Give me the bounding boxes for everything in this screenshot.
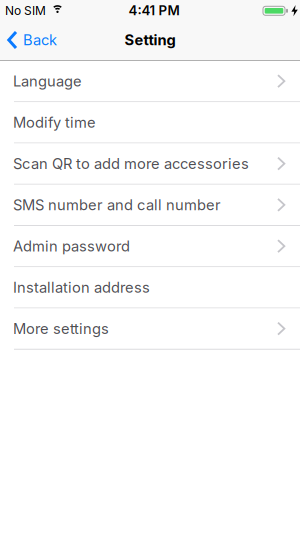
staticText: More settings [13, 320, 109, 337]
button[interactable]: Installation address [0, 267, 300, 307]
staticText: 4:41 PM [128, 3, 179, 18]
staticText: Language [13, 72, 82, 90]
button[interactable]: More settings [0, 308, 300, 349]
button[interactable]: Language [0, 61, 300, 101]
staticText: Setting [124, 31, 175, 49]
staticText: Back [23, 31, 57, 49]
button[interactable]: Modify time [0, 102, 300, 142]
staticText: Installation address [13, 279, 150, 296]
staticText: No SIM [5, 4, 46, 18]
button[interactable]: Back [0, 30, 57, 49]
staticText: Modify time [13, 114, 96, 131]
button[interactable]: SMS number and call number [0, 185, 300, 225]
staticText: Admin password [13, 237, 130, 255]
button[interactable]: Scan QR to add more accessories [0, 143, 300, 184]
button[interactable]: Admin password [0, 226, 300, 266]
staticText: SMS number and call number [13, 196, 221, 213]
staticText: Scan QR to add more accessories [13, 155, 249, 172]
